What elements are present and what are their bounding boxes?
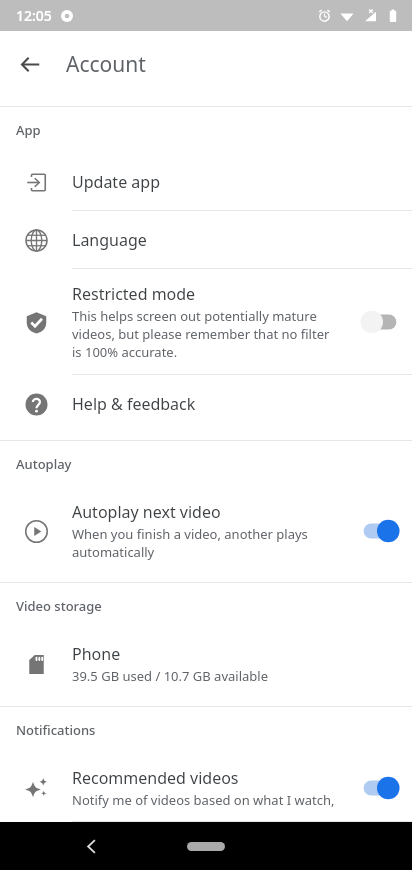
button[interactable]: Phone	[0, 629, 412, 699]
staticText: Recommended videos	[72, 767, 239, 789]
staticText: 12:05	[16, 6, 52, 25]
staticText: Autoplay	[16, 455, 72, 473]
button[interactable]: Restricted mode	[0, 269, 412, 375]
staticText: Notifications	[16, 721, 96, 739]
staticText: Autoplay next video	[72, 501, 221, 523]
staticText: App	[16, 121, 41, 139]
button[interactable]: Home	[166, 831, 246, 861]
button[interactable]: Help & feedback	[0, 375, 412, 433]
button[interactable]: Toggle on	[348, 507, 412, 555]
button[interactable]: Autoplay next video	[0, 487, 412, 575]
staticText: Language	[72, 229, 147, 251]
staticText: Update app	[72, 171, 160, 193]
staticText: When you finish a video, another plays a…	[72, 525, 342, 561]
staticText: 39.5 GB used / 10.7 GB available	[72, 667, 268, 685]
button[interactable]: Back	[74, 829, 108, 863]
button[interactable]: Language	[0, 211, 412, 269]
staticText: This helps screen out potentially mature…	[72, 307, 342, 361]
staticText: Account	[66, 50, 146, 79]
button[interactable]: Toggle on	[348, 764, 412, 812]
button[interactable]: Update app	[0, 153, 412, 211]
staticText: Phone	[72, 643, 121, 665]
staticText: Restricted mode	[72, 283, 196, 305]
staticText: Help & feedback	[72, 393, 196, 415]
button[interactable]: Toggle off	[348, 298, 412, 346]
button[interactable]: Back	[8, 42, 52, 86]
staticText: Video storage	[16, 597, 102, 615]
button[interactable]: Recommended videos	[0, 753, 412, 822]
staticText: Notify me of videos based on what I watc…	[72, 791, 342, 808]
